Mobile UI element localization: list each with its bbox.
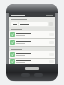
button[interactable]: Menu [34,73,43,77]
button[interactable] [11,22,18,26]
button[interactable]: Clear [9,17,55,27]
button[interactable]: Options [9,51,55,58]
button[interactable]: Options [9,59,55,64]
button[interactable]: Options [9,31,55,38]
button[interactable]: Power [21,73,30,77]
button[interactable]: Options [9,39,55,46]
button[interactable] [19,22,48,26]
